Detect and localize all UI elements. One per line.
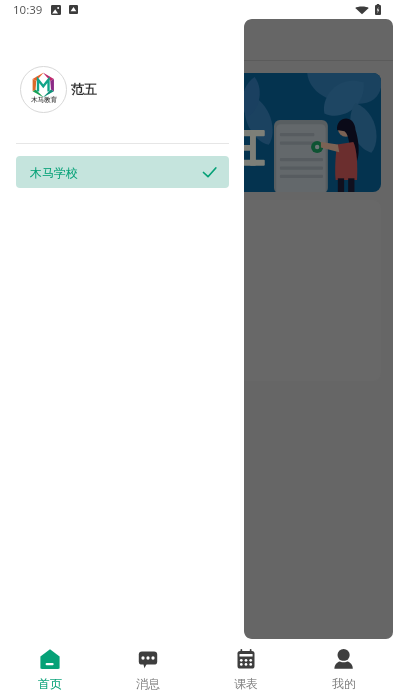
staticText: 木马教育 xyxy=(31,96,57,104)
staticText: 首页 xyxy=(38,676,62,691)
staticText: 课表 xyxy=(234,676,258,691)
staticText: 消息 xyxy=(136,676,160,691)
button[interactable]: 课表 xyxy=(197,639,295,700)
button[interactable]: 我的 xyxy=(295,639,393,700)
button[interactable]: 木马学校 xyxy=(16,156,229,188)
staticText: 范五 xyxy=(71,81,97,97)
button[interactable]: 消息 xyxy=(99,639,197,700)
staticText: 我的 xyxy=(332,676,356,691)
staticText: 10:39 xyxy=(13,2,43,18)
staticText: 木马学校 xyxy=(30,165,78,180)
button[interactable]: 首页 xyxy=(0,639,99,700)
